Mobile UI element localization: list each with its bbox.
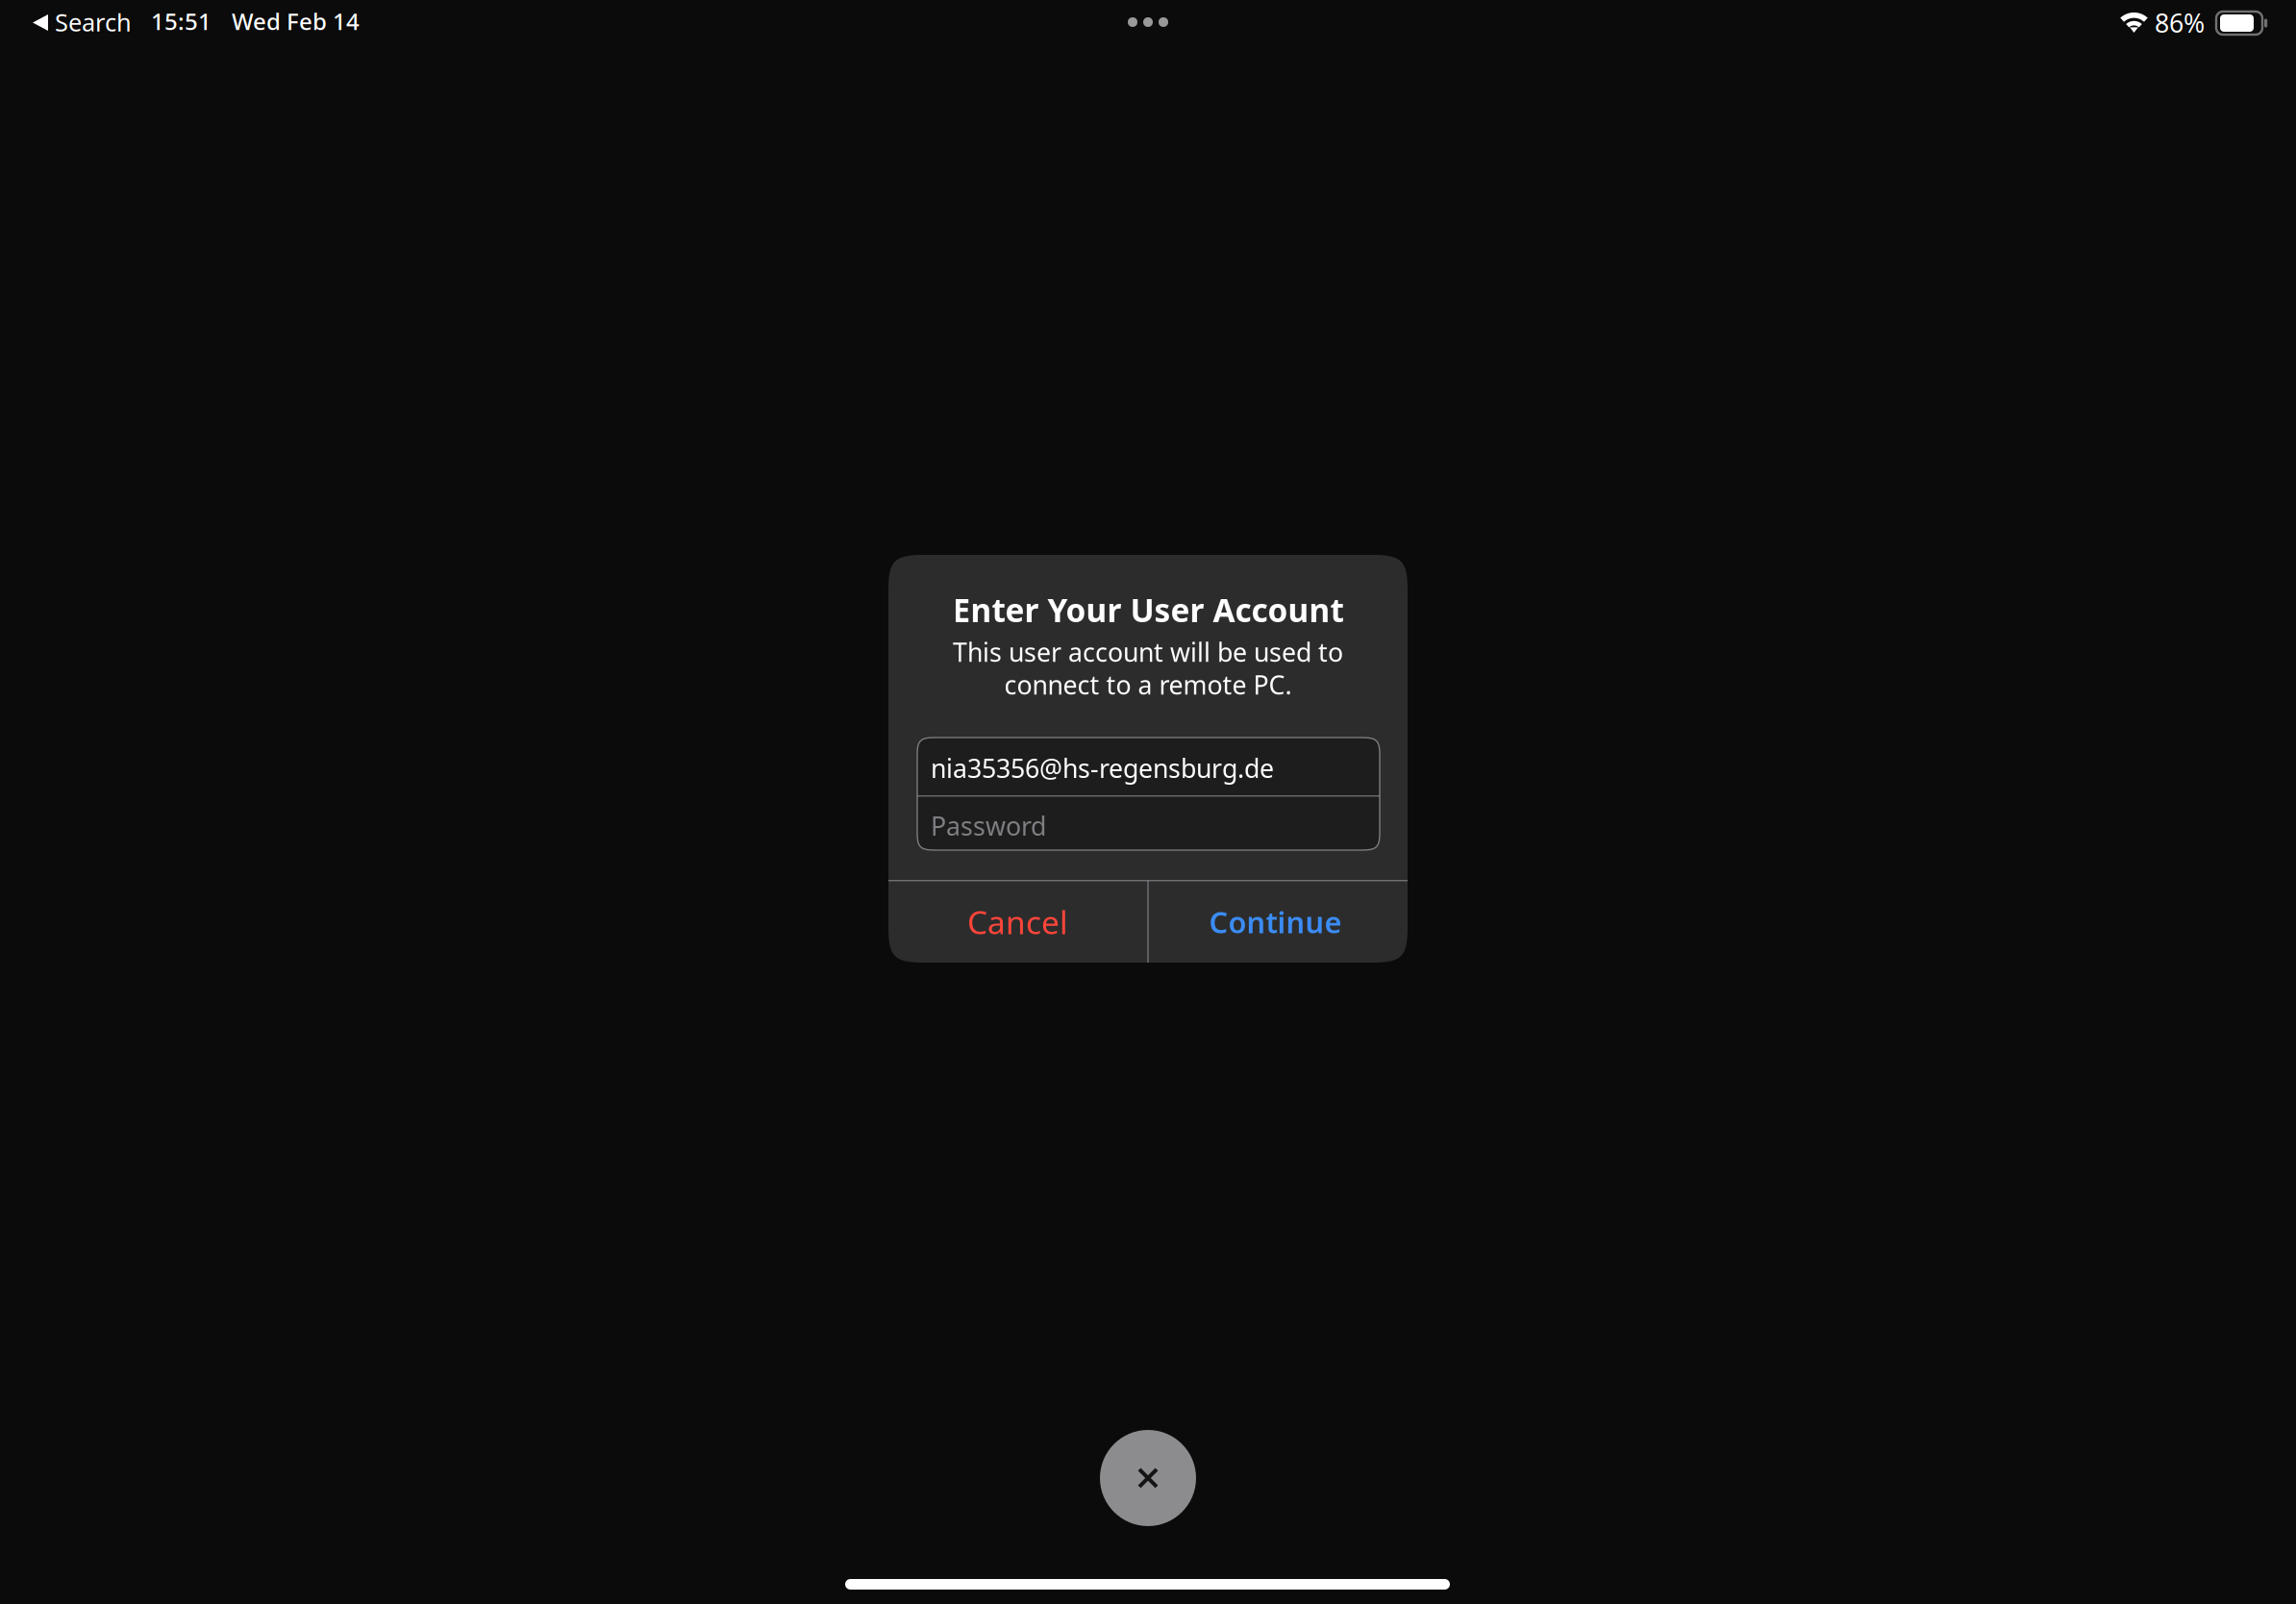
staticText: connect to a remote PC.: [1004, 668, 1292, 702]
staticText: This user account will be used to: [953, 635, 1343, 669]
staticText: 86%: [2155, 6, 2205, 40]
staticText: 15:51: [151, 6, 212, 36]
button[interactable]: Continue: [1146, 881, 1405, 963]
staticText: Password: [931, 809, 1046, 843]
button[interactable]: Cancel: [888, 881, 1147, 963]
staticText: nia35356@hs-regensburg.de: [931, 751, 1274, 785]
button[interactable]: Back to Search: [33, 6, 132, 29]
staticText: Search: [55, 6, 132, 38]
staticText: Enter Your User Account: [952, 588, 1344, 631]
staticText: Continue: [1209, 902, 1342, 941]
staticText: Cancel: [967, 900, 1068, 943]
button[interactable]: Close: [1100, 1430, 1196, 1526]
staticText: Wed Feb 14: [232, 6, 360, 36]
